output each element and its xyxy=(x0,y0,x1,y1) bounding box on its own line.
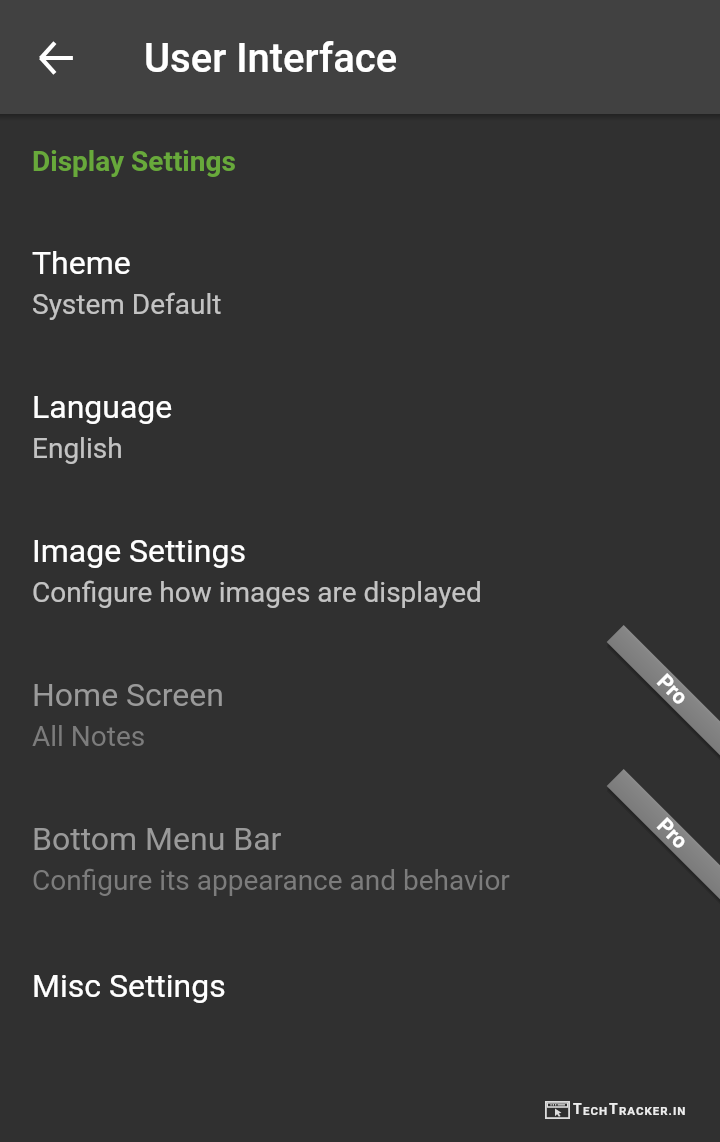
staticText: Bottom Menu Bar xyxy=(32,820,282,858)
staticText: RACKER.IN xyxy=(619,1104,687,1117)
staticText: Pro xyxy=(651,813,692,854)
other: Pro feature xyxy=(596,759,720,919)
staticText: T xyxy=(573,1101,583,1117)
staticText: English xyxy=(32,432,123,465)
staticText: Configure its appearance and behavior xyxy=(32,864,510,897)
staticText: Pro xyxy=(651,669,692,710)
other: TechTracker.in xyxy=(545,1101,687,1119)
staticText: Misc Settings xyxy=(32,967,226,1005)
staticText: Configure how images are displayed xyxy=(32,576,482,609)
staticText: T xyxy=(609,1101,619,1117)
button[interactable]: Image Settings xyxy=(0,532,720,628)
staticText: Home Screen xyxy=(32,676,224,714)
staticText: System Default xyxy=(32,288,222,321)
staticText: Display Settings xyxy=(32,145,236,178)
button[interactable]: Theme xyxy=(0,244,720,340)
staticText: ECH xyxy=(583,1104,609,1117)
staticText: All Notes xyxy=(32,720,146,753)
button[interactable]: Home Screen xyxy=(0,676,720,772)
button[interactable]: Bottom Menu Bar xyxy=(0,820,720,916)
button[interactable]: Back xyxy=(20,22,92,94)
button[interactable]: Language xyxy=(0,388,720,484)
staticText: Theme xyxy=(32,244,131,282)
staticText: User Interface xyxy=(144,35,398,82)
button[interactable]: Misc Settings xyxy=(0,967,720,1019)
staticText: Image Settings xyxy=(32,532,246,570)
other: Pro feature xyxy=(596,615,720,775)
staticText: Language xyxy=(32,388,173,426)
